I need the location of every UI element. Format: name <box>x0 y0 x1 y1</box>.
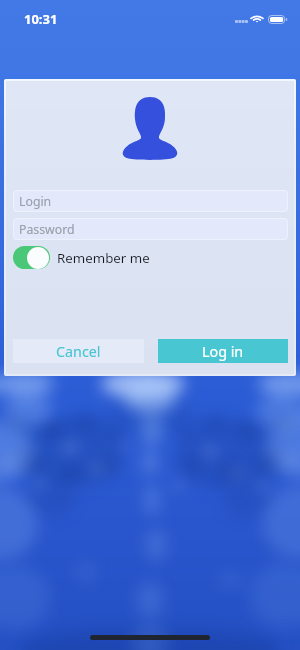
button[interactable]: Password <box>13 218 288 240</box>
staticText: Log in <box>202 342 244 361</box>
button[interactable]: Log in <box>158 339 288 363</box>
button[interactable]: Login <box>13 190 288 212</box>
button[interactable]: Remember me toggle <box>13 246 50 269</box>
staticText: Cancel <box>56 342 101 361</box>
staticText: Login <box>19 193 52 210</box>
staticText: Remember me <box>57 249 150 267</box>
button[interactable]: Cancel <box>13 339 144 363</box>
staticText: 10:31 <box>24 10 58 28</box>
staticText: Password <box>19 221 75 238</box>
